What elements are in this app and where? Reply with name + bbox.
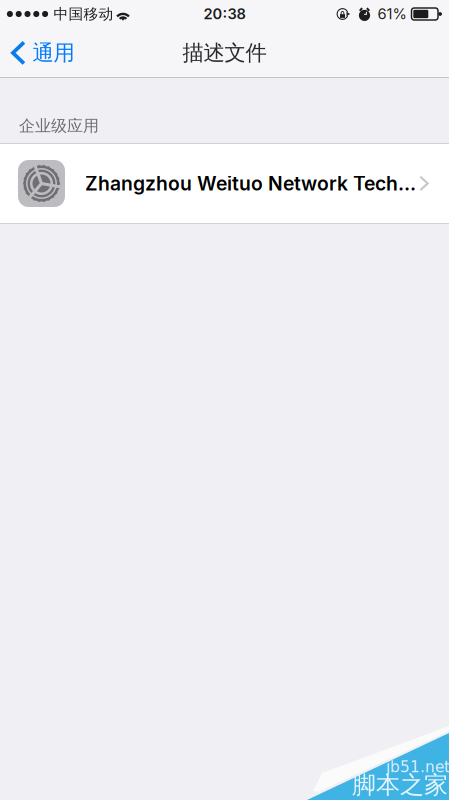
button[interactable]: Zhangzhou Weituo Network Tech... — [0, 144, 449, 223]
staticText: jb51.net — [386, 758, 449, 776]
button[interactable]: 通用 — [0, 28, 84, 78]
staticText: 脚本之家 — [352, 770, 448, 800]
staticText: 中国移动 — [53, 5, 113, 23]
staticText: 描述文件 — [182, 40, 266, 66]
staticText: 通用 — [32, 40, 74, 66]
staticText: 61% — [377, 5, 406, 23]
staticText: Zhangzhou Weituo Network Tech... — [85, 172, 416, 195]
staticText: 企业级应用 — [19, 116, 99, 136]
staticText: 20:38 — [203, 5, 245, 23]
